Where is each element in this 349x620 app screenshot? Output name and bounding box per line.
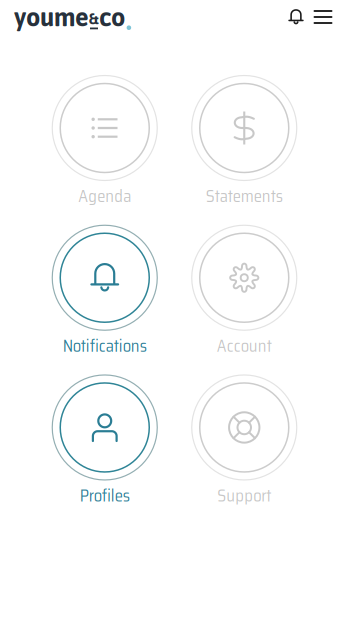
button[interactable]: Support xyxy=(174,374,314,509)
button[interactable]: Notifications xyxy=(283,2,309,32)
staticText: Support xyxy=(217,482,271,509)
staticText: Profiles xyxy=(80,482,130,509)
button[interactable]: Account xyxy=(174,225,314,359)
button[interactable]: Menu xyxy=(309,2,337,32)
button[interactable]: Agenda xyxy=(35,75,174,209)
staticText: Notifications xyxy=(63,333,147,359)
staticText: youme xyxy=(14,2,89,31)
staticText: Agenda xyxy=(78,183,131,209)
button[interactable]: Statements xyxy=(174,75,314,209)
button[interactable]: Profiles xyxy=(35,374,174,509)
staticText: co xyxy=(99,2,125,31)
staticText: & xyxy=(89,10,99,27)
staticText: Statements xyxy=(206,183,283,209)
staticText: Account xyxy=(217,333,272,359)
button[interactable]: Notifications xyxy=(35,225,174,359)
